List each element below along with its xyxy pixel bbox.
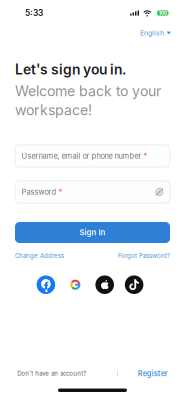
staticText: Change Address bbox=[15, 252, 64, 259]
staticText: * bbox=[141, 151, 147, 160]
staticText: Register bbox=[138, 369, 168, 378]
button[interactable]: Sign in with Google bbox=[66, 275, 85, 294]
staticText: workspace! bbox=[15, 101, 92, 118]
button[interactable]: Sign In bbox=[15, 222, 170, 243]
staticText: Sign In bbox=[79, 228, 105, 237]
staticText: 5:33 bbox=[25, 8, 43, 18]
staticText: Password bbox=[21, 187, 56, 196]
button[interactable]: Sign in with TikTok bbox=[125, 275, 143, 294]
button[interactable]: Sign in with Facebook bbox=[37, 275, 55, 294]
staticText: Welcome back to your bbox=[15, 82, 161, 99]
button[interactable]: Change Address bbox=[15, 252, 64, 259]
button[interactable]: Forgot Password? bbox=[118, 252, 170, 259]
staticText: 100 bbox=[159, 10, 167, 16]
staticText: English bbox=[140, 29, 164, 37]
button[interactable]: Register bbox=[138, 369, 168, 378]
staticText: Let's sign you in. bbox=[15, 61, 126, 78]
staticText: * bbox=[56, 187, 62, 196]
button[interactable]: Sign in with Apple bbox=[95, 275, 114, 294]
button[interactable]: English bbox=[136, 26, 175, 40]
staticText: Forgot Password? bbox=[118, 252, 170, 259]
staticText: Username, email or phone number bbox=[21, 151, 141, 160]
staticText: Don't have an account? bbox=[17, 370, 86, 377]
